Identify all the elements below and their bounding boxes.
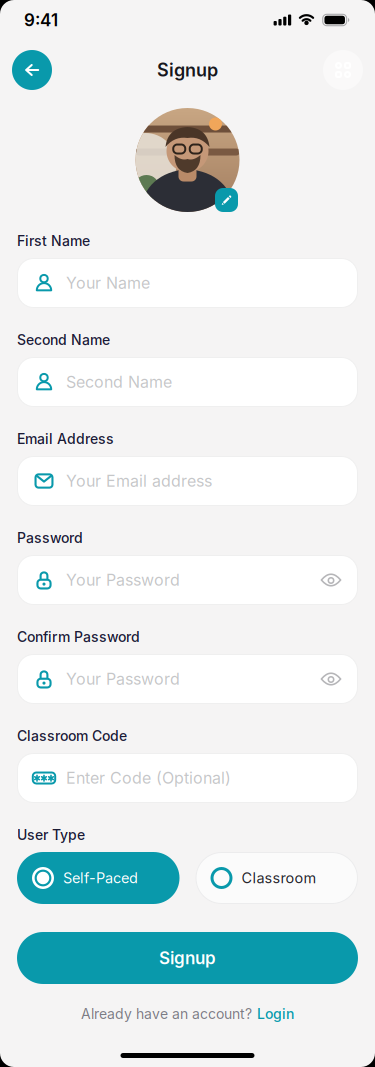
staticText: Classroom Code: [17, 727, 127, 744]
staticText: Signup: [157, 59, 218, 81]
staticText: Login: [257, 1005, 294, 1022]
button[interactable]: Profile photo: [135, 108, 239, 212]
button[interactable]: Edit photo: [215, 188, 238, 212]
button[interactable]: Back: [12, 50, 52, 90]
staticText: 9:41: [24, 10, 58, 30]
button[interactable]: Your Email address: [17, 456, 358, 506]
button[interactable]: Login: [81, 1005, 294, 1023]
button[interactable]: Classroom: [195, 852, 358, 904]
button[interactable]: Your Password: [17, 654, 358, 704]
staticText: Your Email address: [66, 471, 212, 491]
staticText: Email Address: [17, 430, 114, 447]
staticText: Classroom: [241, 869, 316, 887]
staticText: Your Name: [66, 273, 150, 293]
staticText: Your Password: [66, 669, 180, 689]
staticText: Self-Paced: [63, 869, 138, 887]
button[interactable]: Show password: [320, 572, 342, 587]
button[interactable]: Signup: [17, 932, 358, 984]
button[interactable]: Your Name: [17, 258, 358, 308]
staticText: Already have an account?: [81, 1005, 252, 1022]
staticText: Your Password: [66, 570, 180, 590]
staticText: Password: [17, 529, 83, 546]
button[interactable]: Show password: [320, 671, 342, 686]
staticText: Enter Code (Optional): [66, 768, 231, 788]
staticText: User Type: [17, 826, 85, 843]
staticText: Second Name: [66, 372, 172, 392]
button[interactable]: Self-Paced: [17, 852, 179, 904]
button[interactable]: Enter Code (Optional): [17, 753, 358, 803]
staticText: Second Name: [17, 331, 110, 348]
button[interactable]: Second Name: [17, 357, 358, 407]
staticText: Confirm Password: [17, 628, 140, 645]
staticText: First Name: [17, 232, 90, 249]
button[interactable]: Your Password: [17, 555, 358, 605]
staticText: Signup: [159, 948, 216, 968]
